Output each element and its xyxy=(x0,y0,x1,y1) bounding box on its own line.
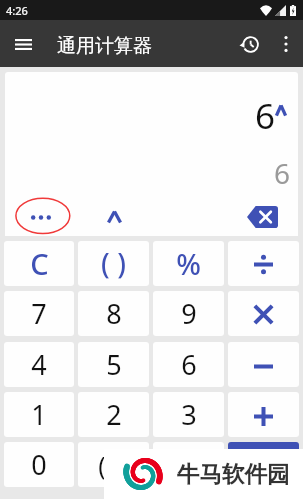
staticText: 8 xyxy=(106,295,122,332)
button[interactable]: 2 xyxy=(78,392,149,437)
staticText: 0 xyxy=(31,446,47,483)
button[interactable]: More options xyxy=(269,27,303,61)
button[interactable]: 8 xyxy=(78,291,149,336)
button[interactable]: Menu xyxy=(0,21,46,67)
staticText: 牛马软件园 xyxy=(177,460,290,488)
staticText: 2 xyxy=(106,396,122,433)
staticText: 4:26 xyxy=(6,3,28,18)
button[interactable]: ( ) xyxy=(78,442,149,487)
button[interactable]: % xyxy=(153,241,224,286)
button[interactable] xyxy=(228,291,299,336)
staticText: 3 xyxy=(181,396,197,433)
button[interactable]: More functions xyxy=(20,200,61,234)
staticText: 7 xyxy=(31,295,47,332)
button[interactable]: C xyxy=(4,241,74,286)
button[interactable]: 0 xyxy=(4,442,74,487)
staticText: 6 xyxy=(181,346,197,383)
staticText: ( ) xyxy=(101,244,126,282)
button[interactable]: 7 xyxy=(4,291,74,336)
staticText: 4 xyxy=(31,346,47,383)
staticText: ( ) xyxy=(98,448,120,482)
button[interactable]: = xyxy=(228,442,299,487)
button[interactable]: 9 xyxy=(153,291,224,336)
button[interactable] xyxy=(228,241,299,286)
button[interactable] xyxy=(228,392,299,437)
button[interactable]: Backspace xyxy=(243,200,282,234)
button[interactable]: 1 xyxy=(4,392,74,437)
staticText: 1 xyxy=(31,396,47,433)
button[interactable]: 3 xyxy=(153,392,224,437)
button[interactable]: ( ) xyxy=(78,241,149,286)
staticText: 6 xyxy=(274,154,291,192)
staticText: % xyxy=(176,244,201,283)
button[interactable]: 6 xyxy=(153,342,224,387)
button[interactable]: History xyxy=(225,22,269,66)
button[interactable]: 5 xyxy=(78,342,149,387)
button[interactable]: 4 xyxy=(4,342,74,387)
staticText: 通用计算器 xyxy=(57,34,152,58)
button[interactable]: Expand xyxy=(95,200,134,234)
button[interactable] xyxy=(153,442,224,487)
staticText: 5 xyxy=(106,346,122,383)
button[interactable] xyxy=(228,342,299,387)
staticText: 6 xyxy=(255,92,276,140)
staticText: 9 xyxy=(181,295,197,332)
staticText: = xyxy=(256,446,272,483)
staticText: C xyxy=(30,244,49,283)
